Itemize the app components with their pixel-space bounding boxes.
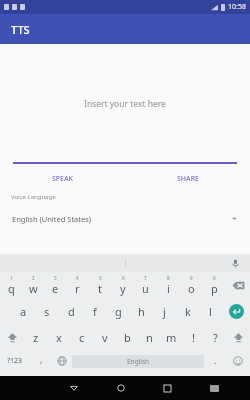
button[interactable]: . [204,350,226,372]
staticText: r [75,281,80,296]
button[interactable]: b [116,324,138,350]
button[interactable]: c [70,324,93,350]
button[interactable]: g [107,298,130,324]
staticText: t [98,281,102,296]
staticText: b [124,330,131,345]
staticText: i [167,281,170,296]
button[interactable]: d [59,298,83,324]
button[interactable]: ?123 [0,350,30,372]
staticText: x [56,330,62,345]
button[interactable]: 3 [44,272,66,298]
staticText: 5 [99,275,102,281]
button[interactable]: ? [204,324,226,350]
staticText: s [44,304,50,319]
button[interactable]: Home [97,376,144,400]
button[interactable]: English (United States) [0,211,250,226]
staticText: j [163,304,166,319]
staticText: ! [192,330,195,345]
button[interactable]: n [138,324,160,350]
staticText: 8 [167,275,170,281]
button[interactable]: 9 [180,272,203,298]
staticText: ?123 [7,356,23,366]
staticText: 6 [122,275,125,281]
button[interactable]: k [176,298,199,324]
button[interactable]: Insert your text here [0,44,250,164]
button[interactable]: a [11,298,35,324]
staticText: English [127,357,150,366]
button[interactable]: 1 [0,272,22,298]
staticText: 9 [190,275,193,281]
button[interactable]: Recent apps [144,376,191,400]
button[interactable]: Shift [0,324,24,350]
staticText: w [29,281,38,296]
button[interactable]: Voice input [228,256,242,270]
staticText: 3 [54,275,57,281]
staticText: ? [213,330,218,345]
button[interactable]: j [153,298,176,324]
staticText: c [79,330,85,345]
button[interactable]: ! [182,324,204,350]
button[interactable]: English [72,355,204,368]
button[interactable]: 8 [157,272,180,298]
staticText: l [209,304,212,319]
staticText: 2 [32,275,35,281]
staticText: SHARE [177,174,199,184]
button[interactable]: 6 [111,272,134,298]
button[interactable]: m [160,324,182,350]
staticText: 7 [144,275,147,281]
staticText: q [8,281,15,296]
staticText: 4 [76,275,79,281]
button[interactable]: Emoji [226,350,250,372]
button[interactable]: x [47,324,70,350]
staticText: p [211,281,218,296]
button[interactable]: f [83,298,107,324]
button[interactable]: z [24,324,47,350]
staticText: 1 [10,275,13,281]
staticText: e [52,281,59,296]
staticText: SPEAK [52,174,74,184]
button[interactable]: SHARE [125,171,250,187]
button[interactable]: Enter [222,298,250,324]
button[interactable]: Switch keyboard [191,376,238,400]
staticText: , [40,353,43,365]
staticText: z [33,330,39,345]
button[interactable]: Backspace [226,272,250,298]
button[interactable]: v [93,324,116,350]
staticText: English (United States) [12,214,92,224]
staticText: m [166,330,177,345]
staticText: y [120,281,126,296]
staticText: . [214,354,217,366]
staticText: Insert your text here [84,98,166,110]
staticText: 10:58 [228,2,246,12]
button[interactable]: s [35,298,59,324]
staticText: h [138,304,145,319]
staticText: o [188,281,195,296]
staticText: v [102,330,108,345]
button[interactable]: h [130,298,153,324]
staticText: a [20,304,27,319]
button[interactable]: Shift [226,324,250,350]
button[interactable]: 5 [88,272,111,298]
button[interactable]: 7 [134,272,157,298]
button[interactable]: SPEAK [0,171,125,187]
staticText: g [115,304,122,319]
button[interactable]: 2 [22,272,44,298]
staticText: f [93,304,97,319]
staticText: n [146,330,153,345]
button[interactable]: , [30,350,52,372]
staticText: k [185,304,191,319]
staticText: TTS [11,22,30,37]
staticText: 0 [213,275,216,281]
button[interactable]: 0 [203,272,226,298]
staticText: Voice Language [11,193,56,201]
staticText: u [142,281,149,296]
staticText: d [68,304,75,319]
button[interactable]: Back [50,376,97,400]
button[interactable]: 4 [66,272,88,298]
button[interactable]: l [199,298,222,324]
button[interactable]: Change language [52,350,72,372]
